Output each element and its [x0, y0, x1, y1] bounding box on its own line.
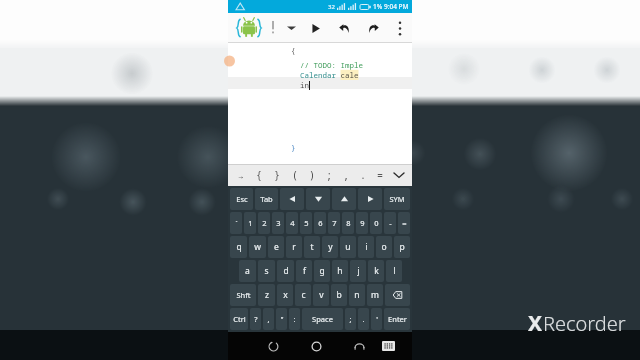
- button[interactable]: 7: [328, 212, 340, 234]
- staticText: l: [393, 265, 396, 277]
- button[interactable]: Warnings: [268, 17, 278, 39]
- button[interactable]: m: [367, 284, 383, 306]
- staticText: SYM: [389, 194, 405, 204]
- button[interactable]: ,: [263, 308, 274, 330]
- button[interactable]: Backspace: [385, 284, 410, 306]
- button[interactable]: {: [228, 43, 412, 164]
- button[interactable]: Back: [348, 335, 370, 357]
- button[interactable]: Space: [302, 308, 343, 330]
- staticText: u: [345, 241, 351, 253]
- button[interactable]: (: [286, 164, 303, 186]
- button[interactable]: w: [249, 236, 266, 258]
- button[interactable]: r: [286, 236, 302, 258]
- staticText: .: [362, 314, 365, 324]
- button[interactable]: Down: [306, 188, 330, 210]
- staticText: in: [300, 80, 309, 90]
- staticText: h: [337, 265, 343, 277]
- button[interactable]: z: [258, 284, 275, 306]
- button[interactable]: Undo: [335, 15, 353, 41]
- button[interactable]: Redo: [364, 15, 382, 41]
- button[interactable]: Left: [280, 188, 304, 210]
- button[interactable]: Hide keyboard: [382, 341, 395, 351]
- staticText: ): [309, 168, 315, 182]
- button[interactable]: Shft: [230, 284, 256, 306]
- button[interactable]: g: [314, 260, 330, 282]
- button[interactable]: 8: [342, 212, 354, 234]
- button[interactable]: SYM: [384, 188, 410, 210]
- button[interactable]: AIDE project: [234, 15, 264, 41]
- staticText: e: [274, 241, 279, 253]
- button[interactable]: e: [268, 236, 284, 258]
- button[interactable]: Up: [332, 188, 356, 210]
- button[interactable]: q: [230, 236, 247, 258]
- staticText: Recorder: [543, 310, 626, 337]
- button[interactable]: :: [289, 308, 300, 330]
- button[interactable]: d: [277, 260, 294, 282]
- staticText: z: [265, 289, 269, 301]
- button[interactable]: y: [322, 236, 338, 258]
- button[interactable]: a: [239, 260, 256, 282]
- button[interactable]: 5: [300, 212, 312, 234]
- button[interactable]: h: [332, 260, 348, 282]
- button[interactable]: .: [358, 308, 369, 330]
- button[interactable]: t: [304, 236, 320, 258]
- button[interactable]: k: [368, 260, 384, 282]
- button[interactable]: →: [232, 164, 250, 186]
- button[interactable]: j: [350, 260, 366, 282]
- button[interactable]: o: [376, 236, 392, 258]
- button[interactable]: n: [349, 284, 365, 306]
- staticText: w: [254, 241, 261, 253]
- button[interactable]: 2: [258, 212, 270, 234]
- button[interactable]: .: [354, 164, 371, 186]
- button[interactable]: }: [268, 164, 286, 186]
- staticText: ?: [254, 314, 258, 324]
- staticText: y: [328, 241, 333, 253]
- button[interactable]: Collapse symbol bar: [388, 164, 410, 186]
- staticText: Shft: [236, 290, 251, 300]
- button[interactable]: c: [295, 284, 311, 306]
- button[interactable]: Enter: [384, 308, 410, 330]
- staticText: k: [374, 265, 379, 277]
- button[interactable]: l: [386, 260, 402, 282]
- button[interactable]: ?: [250, 308, 261, 330]
- button[interactable]: 1: [244, 212, 256, 234]
- button[interactable]: f: [296, 260, 312, 282]
- button[interactable]: ': [371, 308, 382, 330]
- button[interactable]: 0: [370, 212, 382, 234]
- button[interactable]: 6: [314, 212, 326, 234]
- button[interactable]: 9: [356, 212, 368, 234]
- button[interactable]: `: [230, 212, 242, 234]
- button[interactable]: b: [331, 284, 347, 306]
- button[interactable]: Overflow menu: [392, 15, 408, 41]
- button[interactable]: ;: [345, 308, 356, 330]
- button[interactable]: v: [313, 284, 329, 306]
- button[interactable]: u: [340, 236, 356, 258]
- button[interactable]: ;: [320, 164, 337, 186]
- staticText: o: [381, 241, 387, 253]
- button[interactable]: 3: [272, 212, 284, 234]
- staticText: Ctrl: [233, 314, 246, 324]
- button[interactable]: Ctrl: [230, 308, 248, 330]
- button[interactable]: =: [398, 212, 410, 234]
- button[interactable]: -: [384, 212, 396, 234]
- button[interactable]: 4: [286, 212, 298, 234]
- button[interactable]: Home: [305, 335, 327, 357]
- button[interactable]: More options dropdown: [283, 15, 299, 41]
- button[interactable]: x: [277, 284, 293, 306]
- button[interactable]: ): [303, 164, 320, 186]
- button[interactable]: Recent apps: [262, 335, 284, 357]
- button[interactable]: Run: [306, 15, 324, 41]
- button[interactable]: =: [371, 164, 388, 186]
- button[interactable]: Esc: [230, 188, 253, 210]
- button[interactable]: Right: [358, 188, 382, 210]
- button[interactable]: i: [358, 236, 374, 258]
- button[interactable]: Tab: [255, 188, 278, 210]
- staticText: 4: [290, 218, 295, 228]
- staticText: Tab: [260, 194, 273, 204]
- button[interactable]: s: [258, 260, 275, 282]
- button[interactable]: p: [394, 236, 410, 258]
- button[interactable]: ": [276, 308, 287, 330]
- button[interactable]: ,: [337, 164, 354, 186]
- button[interactable]: {: [250, 164, 268, 186]
- staticText: 1% 9:04 PM: [373, 2, 409, 11]
